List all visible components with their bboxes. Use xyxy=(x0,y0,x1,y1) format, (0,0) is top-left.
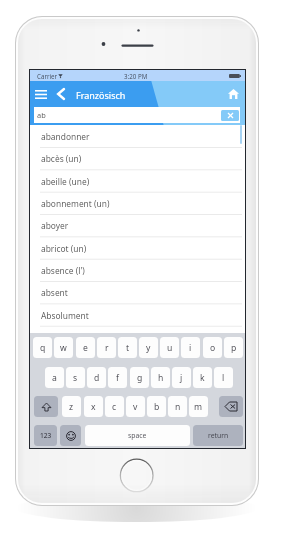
button[interactable]: s xyxy=(66,367,85,388)
staticText: ab xyxy=(37,110,46,120)
staticText: n xyxy=(175,401,181,413)
button[interactable]: Menu xyxy=(32,81,49,107)
staticText: a xyxy=(52,372,57,384)
button[interactable]: abandonner xyxy=(30,125,245,147)
button[interactable]: abeille (une) xyxy=(30,170,245,192)
staticText: p xyxy=(231,342,237,354)
staticText: q xyxy=(40,342,46,354)
button[interactable]: x xyxy=(84,396,103,417)
button[interactable]: k xyxy=(193,367,212,388)
staticText: f xyxy=(116,372,119,384)
button[interactable]: n xyxy=(168,396,187,417)
button[interactable]: Emoji xyxy=(60,425,81,446)
button[interactable]: w xyxy=(54,337,73,358)
staticText: k xyxy=(200,372,205,384)
button[interactable]: absence (l') xyxy=(30,259,245,281)
staticText: e xyxy=(83,342,88,354)
staticText: m xyxy=(194,401,203,413)
button[interactable]: f xyxy=(108,367,127,388)
staticText: g xyxy=(137,372,143,384)
button[interactable]: i xyxy=(181,337,200,358)
button[interactable]: Home xyxy=(222,81,244,107)
staticText: abonnement (un) xyxy=(41,198,110,209)
button[interactable]: t xyxy=(118,337,137,358)
staticText: c xyxy=(112,401,117,413)
button[interactable]: Backspace xyxy=(219,396,243,417)
button[interactable]: m xyxy=(189,396,208,417)
button[interactable]: e xyxy=(76,337,95,358)
staticText: z xyxy=(69,401,74,413)
button[interactable]: l xyxy=(214,367,233,388)
staticText: return xyxy=(208,431,229,440)
staticText: o xyxy=(210,342,216,354)
button[interactable]: ab xyxy=(34,107,240,123)
button[interactable]: abricot (un) xyxy=(30,237,245,259)
button[interactable]: absent xyxy=(30,281,245,303)
button[interactable]: abcès (un) xyxy=(30,147,245,169)
button[interactable]: h xyxy=(151,367,170,388)
staticText: aboyer xyxy=(41,220,69,231)
button[interactable]: c xyxy=(105,396,124,417)
staticText: abricot (un) xyxy=(41,243,87,254)
staticText: j xyxy=(180,372,183,384)
staticText: w xyxy=(60,342,67,354)
staticText: h xyxy=(158,372,164,384)
button[interactable]: y xyxy=(139,337,158,358)
staticText: Französisch xyxy=(76,89,126,101)
staticText: r xyxy=(105,342,109,354)
button[interactable]: b xyxy=(147,396,166,417)
button[interactable]: p xyxy=(224,337,243,358)
button[interactable]: abonnement (un) xyxy=(30,192,245,214)
button[interactable]: j xyxy=(172,367,191,388)
button[interactable]: return xyxy=(193,425,243,446)
staticText: 3:20 PM xyxy=(124,72,148,80)
button[interactable]: z xyxy=(62,396,81,417)
staticText: abeille (une) xyxy=(41,176,90,187)
staticText: l xyxy=(222,372,225,384)
staticText: absent xyxy=(41,287,68,298)
staticText: d xyxy=(94,372,100,384)
staticText: Absolument xyxy=(41,310,89,321)
button[interactable]: Shift xyxy=(34,396,58,417)
button[interactable]: aboyer xyxy=(30,214,245,236)
button[interactable]: Clear xyxy=(221,110,239,121)
staticText: 123 xyxy=(40,431,52,440)
staticText: s xyxy=(73,372,78,384)
button[interactable]: Absolument xyxy=(30,304,245,326)
button[interactable]: q xyxy=(33,337,52,358)
staticText: i xyxy=(189,342,192,354)
button[interactable]: v xyxy=(126,396,145,417)
staticText: Carrier xyxy=(37,72,58,80)
staticText: y xyxy=(146,342,151,354)
staticText: abcès (un) xyxy=(41,153,82,164)
button[interactable]: u xyxy=(160,337,179,358)
button[interactable]: o xyxy=(203,337,222,358)
button[interactable]: Back xyxy=(52,81,68,107)
staticText: t xyxy=(126,342,130,354)
button[interactable]: r xyxy=(97,337,116,358)
staticText: abandonner xyxy=(41,131,90,142)
button[interactable]: a xyxy=(45,367,64,388)
button[interactable]: space xyxy=(85,425,190,446)
staticText: space xyxy=(128,431,147,440)
staticText: x xyxy=(91,401,96,413)
staticText: v xyxy=(133,401,138,413)
button[interactable]: d xyxy=(87,367,106,388)
staticText: u xyxy=(167,342,173,354)
staticText: b xyxy=(154,401,160,413)
button[interactable]: Numbers xyxy=(34,425,57,446)
staticText: absence (l') xyxy=(41,265,85,276)
button[interactable]: g xyxy=(130,367,149,388)
